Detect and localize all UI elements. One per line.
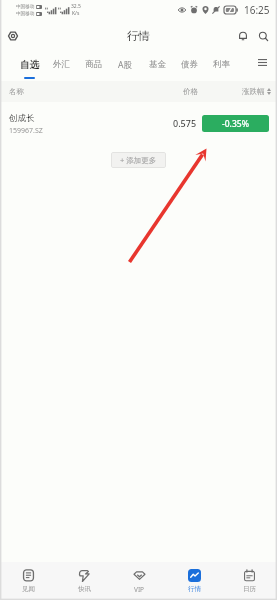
button[interactable]: Search xyxy=(253,26,273,46)
staticText: 0.575 xyxy=(173,117,197,129)
button[interactable]: 债券 xyxy=(173,49,205,81)
button[interactable]: Notifications xyxy=(233,26,253,46)
staticText: 利率 xyxy=(213,59,230,70)
button[interactable]: VIP xyxy=(112,562,167,600)
button[interactable]: + 添加更多 xyxy=(111,152,166,168)
button[interactable]: A股 xyxy=(109,49,141,81)
staticText: 自选 xyxy=(20,59,39,71)
staticText: 32.5 xyxy=(71,3,81,10)
staticText: 创成长 xyxy=(9,113,35,124)
button[interactable]: 利率 xyxy=(205,49,237,81)
staticText: A股 xyxy=(118,59,132,71)
staticText: 名称 xyxy=(9,87,24,96)
staticText: 快讯 xyxy=(78,585,91,593)
button[interactable]: 创成长 xyxy=(0,102,277,144)
staticText: 涨跌幅 xyxy=(242,87,265,96)
staticText: -0.35% xyxy=(222,118,249,130)
staticText: 16:25 xyxy=(244,3,270,17)
staticText: 行情 xyxy=(127,29,150,43)
staticText: 外汇 xyxy=(53,59,70,70)
staticText: 中国移动 xyxy=(16,4,35,10)
staticText: 债券 xyxy=(181,59,198,70)
staticText: 行情 xyxy=(188,585,201,593)
button[interactable]: 商品 xyxy=(77,49,109,81)
staticText: VIP xyxy=(134,585,145,594)
button[interactable]: 行情 xyxy=(167,562,222,600)
staticText: 中国移动 xyxy=(16,11,35,17)
staticText: 见闻 xyxy=(22,585,35,593)
staticText: 基金 xyxy=(149,59,166,70)
staticText: 价格 xyxy=(183,87,198,96)
button[interactable]: 见闻 xyxy=(0,562,56,600)
button[interactable]: 日历 xyxy=(222,562,277,600)
button[interactable]: 外汇 xyxy=(45,49,77,81)
button[interactable]: 快讯 xyxy=(56,562,112,600)
staticText: K/s xyxy=(72,10,80,17)
staticText: 商品 xyxy=(85,59,102,70)
staticText: 日历 xyxy=(243,585,256,593)
button[interactable]: 基金 xyxy=(141,49,173,81)
button[interactable]: Profile xyxy=(3,26,23,46)
staticText: + 添加更多 xyxy=(120,155,157,165)
button[interactable]: More tabs xyxy=(253,53,271,71)
button[interactable]: 自选 xyxy=(13,49,45,81)
staticText: 159967.SZ xyxy=(9,126,43,136)
